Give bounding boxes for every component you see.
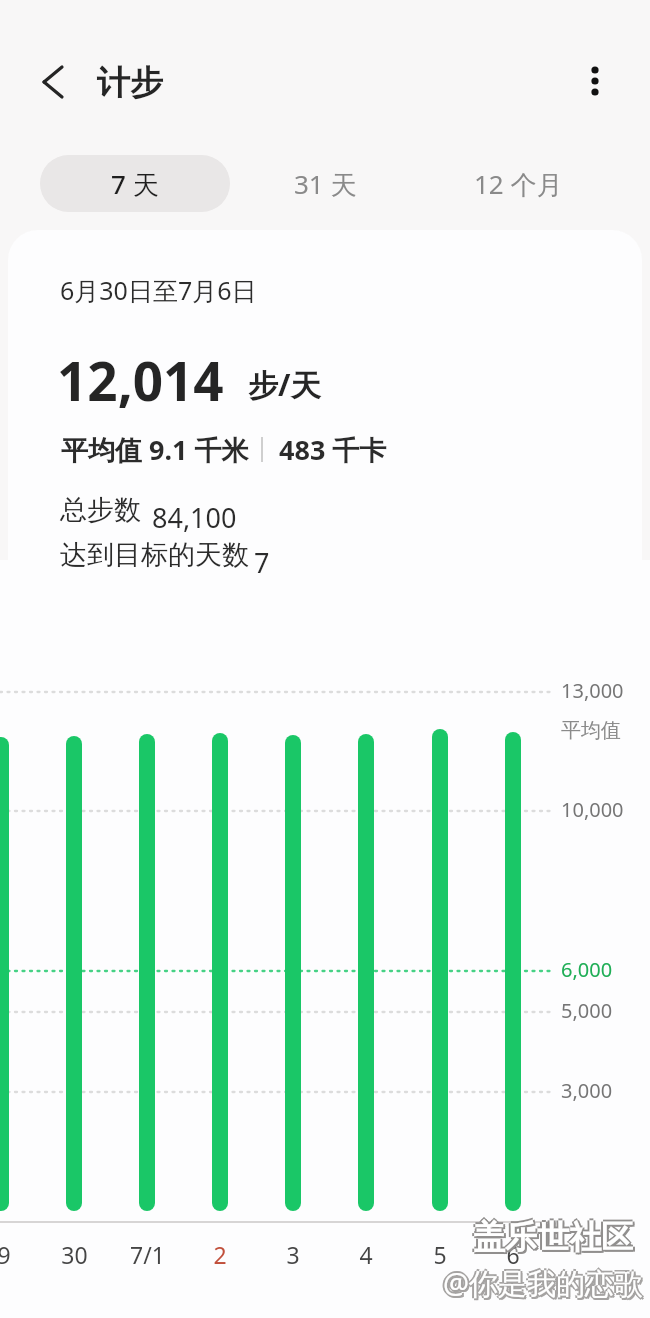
staticText: 7 天 xyxy=(111,166,159,202)
staticText: @你是我的恋歌 xyxy=(443,1265,644,1305)
staticText: 5 xyxy=(433,1239,447,1270)
staticText: @你是我的恋歌 xyxy=(443,1263,644,1303)
staticText: 步/天 xyxy=(248,364,321,405)
staticText: 7/1 xyxy=(130,1239,165,1270)
staticText: @你是我的恋歌 xyxy=(443,1261,644,1301)
button[interactable] xyxy=(571,58,619,106)
staticText: 483 千卡 xyxy=(279,431,387,468)
staticText: 6月30日至7月6日 xyxy=(60,273,257,307)
staticText: 平均值 9.1 千米 xyxy=(61,431,249,468)
button[interactable]: 12 个月 xyxy=(443,155,593,212)
staticText: 84,100 xyxy=(152,499,237,536)
staticText: 3 xyxy=(286,1239,300,1270)
staticText: 盖乐世社区 xyxy=(471,1217,631,1257)
staticText: 盖乐世社区 xyxy=(473,1215,633,1255)
staticText: 10,000 xyxy=(561,796,624,823)
staticText: 盖乐世社区 xyxy=(475,1219,635,1259)
staticText: 盖乐世社区 xyxy=(475,1217,635,1257)
button[interactable]: 31 天 xyxy=(260,155,390,212)
staticText: 计步 xyxy=(97,62,163,104)
staticText: 12,014 xyxy=(57,344,224,416)
staticText: @你是我的恋歌 xyxy=(441,1263,642,1303)
staticText: 达到目标的天数 xyxy=(60,538,249,572)
staticText: 平均值 xyxy=(561,718,621,743)
staticText: 7 xyxy=(254,544,270,581)
staticText: 5,000 xyxy=(561,997,613,1024)
staticText: 9 xyxy=(0,1239,11,1270)
staticText: 总步数 xyxy=(60,493,141,527)
staticText: 6,000 xyxy=(561,956,613,983)
staticText: 31 天 xyxy=(294,166,357,202)
staticText: @你是我的恋歌 xyxy=(445,1265,646,1305)
staticText: 盖乐世社区 xyxy=(473,1219,633,1259)
staticText: @你是我的恋歌 xyxy=(445,1263,646,1303)
button[interactable]: 7 天 xyxy=(40,155,230,212)
button[interactable] xyxy=(28,54,84,110)
staticText: 13,000 xyxy=(561,677,624,704)
staticText: 6 xyxy=(506,1239,520,1270)
staticText: 3,000 xyxy=(561,1077,613,1104)
staticText: 4 xyxy=(359,1239,373,1270)
staticText: 盖乐世社区 xyxy=(473,1217,633,1257)
staticText: 2 xyxy=(213,1239,227,1270)
staticText: 30 xyxy=(61,1239,88,1270)
staticText: 12 个月 xyxy=(474,166,563,202)
